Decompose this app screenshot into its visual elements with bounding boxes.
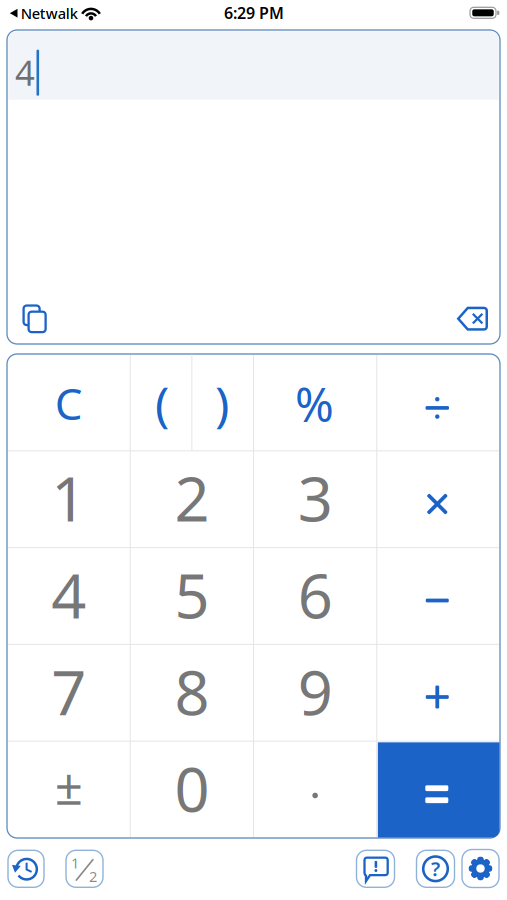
- button[interactable]: Copy: [19, 301, 51, 335]
- staticText: 6: [298, 554, 333, 635]
- button[interactable]: 9: [254, 645, 376, 740]
- staticText: 4: [15, 49, 35, 95]
- button[interactable]: 7: [8, 645, 129, 740]
- button[interactable]: Delete: [456, 306, 488, 331]
- button[interactable]: C: [8, 355, 129, 450]
- button[interactable]: Help: [416, 850, 454, 887]
- button[interactable]: Add: [378, 645, 499, 740]
- button[interactable]: 1: [8, 452, 129, 547]
- button[interactable]: Settings: [462, 849, 499, 887]
- staticText: Netwalk: [21, 4, 78, 23]
- button[interactable]: ): [193, 355, 252, 450]
- button[interactable]: ±: [8, 742, 129, 837]
- button[interactable]: Equals: [378, 742, 500, 837]
- staticText: C: [55, 374, 83, 432]
- button[interactable]: Decimal point: [254, 742, 376, 837]
- button[interactable]: Fractions: [66, 850, 103, 887]
- button[interactable]: 2: [131, 452, 252, 547]
- button[interactable]: (: [131, 355, 191, 450]
- staticText: 0: [174, 747, 209, 829]
- staticText: (: [155, 371, 169, 435]
- button[interactable]: %: [254, 355, 376, 450]
- staticText: 6:29 PM: [224, 2, 284, 23]
- staticText: 8: [174, 651, 209, 732]
- button[interactable]: 3: [254, 452, 376, 547]
- button[interactable]: Multiply: [378, 452, 499, 547]
- button[interactable]: Feedback: [356, 850, 394, 887]
- staticText: 4: [51, 554, 86, 635]
- button[interactable]: History: [8, 850, 44, 887]
- staticText: ): [215, 371, 229, 435]
- staticText: %: [295, 373, 334, 435]
- button[interactable]: 4: [8, 549, 129, 643]
- staticText: 3: [298, 457, 333, 538]
- button[interactable]: 0: [131, 742, 252, 837]
- button[interactable]: 8: [131, 645, 252, 740]
- button[interactable]: 5: [131, 549, 252, 643]
- staticText: 7: [51, 651, 86, 732]
- staticText: 9: [298, 651, 333, 732]
- staticText: ?: [431, 855, 440, 882]
- staticText: 1: [51, 457, 86, 538]
- button[interactable]: Subtract: [378, 549, 499, 643]
- staticText: 5: [174, 554, 209, 635]
- button[interactable]: Divide: [378, 355, 499, 450]
- staticText: 2: [89, 867, 97, 886]
- staticText: ±: [55, 753, 83, 818]
- staticText: 2: [174, 457, 209, 538]
- staticText: 1: [71, 853, 79, 873]
- button[interactable]: 6: [254, 549, 376, 643]
